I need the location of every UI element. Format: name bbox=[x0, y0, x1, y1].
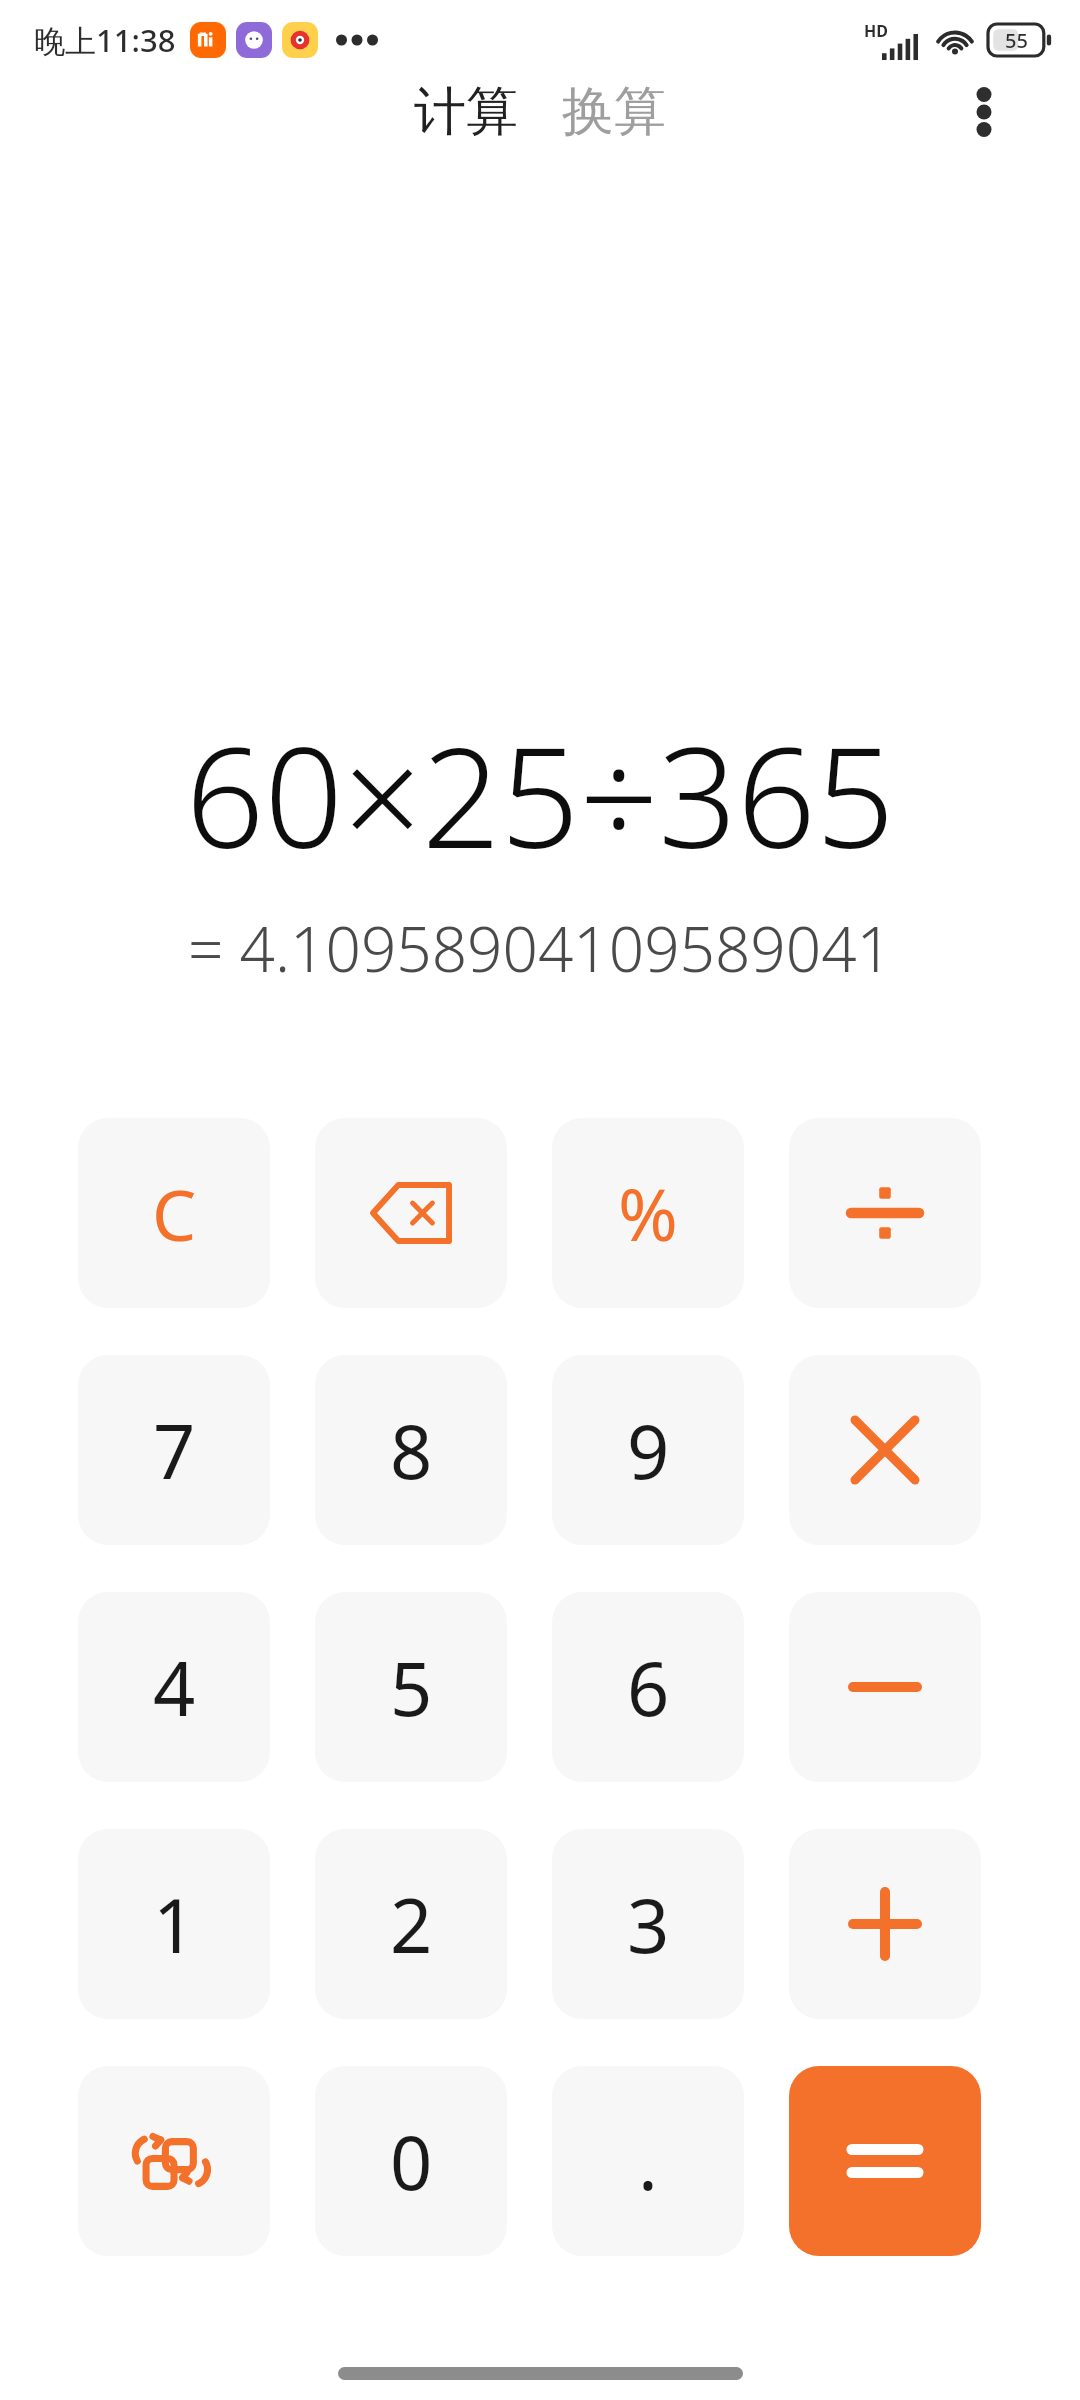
staticText: = 4.10958904109589041 bbox=[188, 906, 892, 990]
button[interactable]: Multiply bbox=[789, 1355, 981, 1545]
staticText: 60×25÷365 bbox=[185, 700, 895, 888]
staticText: 6 bbox=[627, 1637, 670, 1738]
button[interactable]: Backspace bbox=[315, 1118, 507, 1308]
staticText: HD bbox=[864, 20, 888, 42]
staticText: 55 bbox=[1005, 27, 1028, 54]
button[interactable]: 1 bbox=[78, 1829, 270, 2019]
staticText: 1 bbox=[153, 1874, 196, 1975]
button[interactable]: 9 bbox=[552, 1355, 744, 1545]
staticText: 9 bbox=[627, 1400, 670, 1501]
button[interactable]: % bbox=[552, 1118, 744, 1308]
button[interactable]: 计算 bbox=[408, 75, 524, 149]
button[interactable]: 3 bbox=[552, 1829, 744, 2019]
staticText: 5 bbox=[390, 1637, 433, 1738]
button[interactable]: 4 bbox=[78, 1592, 270, 1782]
button[interactable]: Equals bbox=[789, 2066, 981, 2256]
button[interactable]: More options bbox=[946, 74, 1022, 150]
staticText: 8 bbox=[390, 1400, 433, 1501]
staticText: . bbox=[638, 2111, 658, 2212]
button[interactable]: 6 bbox=[552, 1592, 744, 1782]
button[interactable]: Divide bbox=[789, 1118, 981, 1308]
staticText: 3 bbox=[627, 1874, 670, 1975]
staticText: 4 bbox=[153, 1637, 196, 1738]
button[interactable]: 2 bbox=[315, 1829, 507, 2019]
button[interactable]: C bbox=[78, 1118, 270, 1308]
button[interactable]: . bbox=[552, 2066, 744, 2256]
button[interactable]: Add bbox=[789, 1829, 981, 2019]
button[interactable]: 7 bbox=[78, 1355, 270, 1545]
button[interactable]: 0 bbox=[315, 2066, 507, 2256]
button[interactable]: Unit conversion bbox=[78, 2066, 270, 2256]
button[interactable]: 8 bbox=[315, 1355, 507, 1545]
staticText: 换算 bbox=[562, 79, 666, 145]
staticText: C bbox=[152, 1166, 197, 1261]
staticText: 0 bbox=[390, 2111, 433, 2212]
button[interactable]: Subtract bbox=[789, 1592, 981, 1782]
button[interactable]: 5 bbox=[315, 1592, 507, 1782]
button[interactable]: 换算 bbox=[556, 75, 672, 149]
staticText: 晚上11:38 bbox=[34, 19, 176, 61]
staticText: % bbox=[618, 1164, 678, 1262]
staticText: 7 bbox=[153, 1400, 196, 1501]
staticText: 计算 bbox=[414, 79, 518, 145]
staticText: 2 bbox=[390, 1874, 433, 1975]
